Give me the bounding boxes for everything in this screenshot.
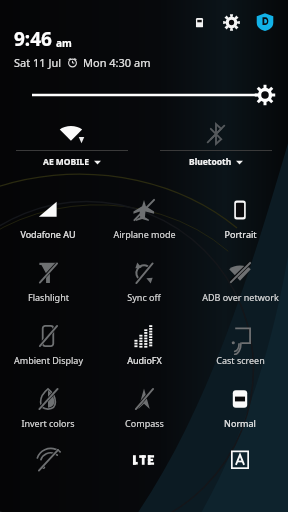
staticText: Compass (125, 417, 164, 429)
button[interactable]: Settings (218, 9, 244, 35)
staticText: Vodafone AU (20, 228, 76, 240)
button[interactable]: Quick setting (192, 440, 288, 480)
staticText: 9:46 (14, 26, 52, 52)
button[interactable]: Sync off (96, 251, 192, 314)
button[interactable]: Security shield (252, 9, 278, 35)
button[interactable]: Portrait (192, 188, 288, 251)
button[interactable]: Bluetooth (144, 118, 288, 178)
button[interactable]: User battery (188, 11, 210, 33)
staticText: Mon 4:30 am (83, 55, 151, 70)
staticText: am (56, 36, 72, 50)
staticText: Airplane mode (113, 228, 176, 240)
button[interactable]: Compass (96, 377, 192, 440)
button[interactable]: Quick setting (0, 440, 96, 480)
staticText: Flashlight (28, 291, 69, 303)
button[interactable]: Quick setting (96, 440, 192, 480)
button[interactable]: Airplane mode (96, 188, 192, 251)
staticText: Ambient Display (14, 354, 83, 366)
staticText: Normal (224, 417, 256, 429)
staticText: Portrait (224, 228, 257, 240)
button[interactable]: Normal (192, 377, 288, 440)
button[interactable]: ADB over network (192, 251, 288, 314)
button[interactable]: Brightness (0, 78, 288, 112)
button[interactable]: Cast screen (192, 314, 288, 377)
staticText: Cast screen (216, 354, 265, 366)
staticText: AE MOBILE (43, 156, 90, 168)
staticText: Invert colors (21, 417, 75, 429)
staticText: AudioFX (127, 354, 162, 366)
staticText: ADB over network (202, 291, 279, 303)
button[interactable]: AudioFX (96, 314, 192, 377)
button[interactable]: Vodafone AU (0, 188, 96, 251)
button[interactable]: Ambient Display (0, 314, 96, 377)
button[interactable]: Flashlight (0, 251, 96, 314)
button[interactable]: Wi-Fi (0, 118, 144, 178)
staticText: Sync off (127, 291, 161, 303)
staticText: Bluetooth (189, 156, 232, 168)
staticText: Sat 11 Jul (14, 55, 62, 70)
button[interactable]: Invert colors (0, 377, 96, 440)
